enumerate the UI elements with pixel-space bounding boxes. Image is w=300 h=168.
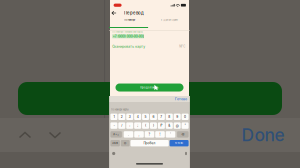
staticText: 4: [137, 115, 139, 119]
staticText: ☺: [124, 142, 127, 145]
button[interactable]: Emoji: [112, 152, 115, 155]
button[interactable]: ₽: [158, 122, 165, 129]
button[interactable]: 5: [142, 114, 149, 120]
button[interactable]: 2: [118, 114, 125, 120]
button[interactable]: 4: [134, 114, 141, 120]
staticText: В другой стране: [160, 18, 177, 21]
button[interactable]: ): [150, 122, 157, 129]
staticText: Готово: [175, 142, 184, 145]
staticText: Готово: [175, 97, 187, 101]
staticText: ⌫: [181, 133, 184, 136]
staticText: (: [145, 124, 146, 128]
button[interactable]: -: [110, 122, 117, 129]
button[interactable]: Previous field: [10, 118, 40, 152]
staticText: По номеру: [124, 18, 135, 21]
button[interactable]: @: [174, 122, 181, 129]
button[interactable]: Back: [112, 9, 116, 17]
staticText: .: [128, 132, 129, 136]
staticText: ;: [137, 124, 138, 128]
staticText: 1: [113, 115, 114, 119]
button[interactable]: ": [182, 122, 189, 129]
staticText: По номеру карты: [111, 108, 129, 111]
staticText: Сканировать карту: [112, 44, 145, 48]
staticText: 7: [160, 115, 162, 119]
button[interactable]: ?: [145, 131, 154, 138]
staticText: ,: [138, 132, 139, 136]
staticText: :: [129, 124, 130, 128]
staticText: #+=: [113, 133, 119, 136]
staticText: 2: [121, 115, 123, 119]
staticText: &: [168, 124, 170, 128]
staticText: -: [113, 124, 114, 128]
button[interactable]: Пробел: [130, 140, 169, 146]
staticText: ): [153, 124, 154, 128]
button[interactable]: Done: [236, 118, 290, 152]
button[interactable]: (: [142, 122, 149, 129]
button[interactable]: Next field: [40, 118, 70, 152]
button[interactable]: ⌫: [177, 131, 189, 138]
staticText: @: [176, 124, 179, 128]
button[interactable]: .: [124, 131, 133, 138]
button[interactable]: ;: [134, 122, 141, 129]
button[interactable]: ': [166, 131, 175, 138]
staticText: ": [185, 124, 186, 128]
staticText: +7 (900) 000-00-00: [113, 34, 143, 38]
button[interactable]: По номеру: [110, 18, 149, 22]
staticText: Перевод: [124, 10, 144, 16]
button[interactable]: ,: [134, 131, 144, 138]
staticText: Продолжить: [140, 86, 159, 89]
button[interactable]: 1: [110, 114, 117, 120]
staticText: 0: [184, 115, 186, 119]
staticText: ?: [148, 132, 150, 136]
button[interactable]: &: [166, 122, 173, 129]
staticText: Пробел: [144, 141, 156, 145]
staticText: 3: [129, 115, 131, 119]
staticText: 6: [152, 115, 154, 119]
button[interactable]: 9: [174, 114, 181, 120]
button[interactable]: Сканировать карту: [112, 44, 185, 49]
staticText: АБВ: [112, 142, 118, 145]
button[interactable]: 8: [166, 114, 173, 120]
staticText: 5: [144, 115, 146, 119]
button[interactable]: Продолжить: [115, 83, 183, 91]
staticText: NFC: [179, 45, 185, 48]
button[interactable]: 7: [158, 114, 165, 120]
button[interactable]: ☺: [121, 140, 130, 146]
staticText: /: [121, 124, 122, 128]
button[interactable]: Готово: [175, 97, 187, 101]
button[interactable]: /: [118, 122, 125, 129]
button[interactable]: !: [155, 131, 165, 138]
button[interactable]: 0: [182, 114, 189, 120]
button[interactable]: :: [126, 122, 133, 129]
staticText: Done: [241, 124, 284, 145]
staticText: 9: [176, 115, 178, 119]
staticText: По номеру телефона или карты: [112, 31, 143, 33]
button[interactable]: 6: [150, 114, 157, 120]
button[interactable]: Готово: [170, 140, 189, 146]
staticText: ₽: [160, 124, 162, 128]
button[interactable]: Dictate: [185, 152, 187, 155]
staticText: 8: [168, 115, 170, 119]
button[interactable]: АБВ: [110, 140, 120, 146]
button[interactable]: В другой стране: [149, 18, 189, 22]
button[interactable]: 3: [126, 114, 133, 120]
staticText: ': [170, 132, 171, 136]
button[interactable]: #+=: [110, 131, 122, 138]
